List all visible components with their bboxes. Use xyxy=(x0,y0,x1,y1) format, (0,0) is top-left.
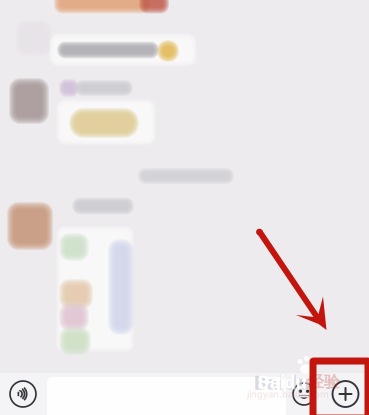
staticText: jingyan.baidu.com xyxy=(247,388,329,400)
staticText: Baidu xyxy=(253,369,310,395)
button[interactable]: More xyxy=(327,371,363,415)
button[interactable]: Voice input xyxy=(0,371,46,415)
button[interactable]: Emoji xyxy=(287,371,321,415)
staticText: 经验 xyxy=(308,372,340,392)
staticText: Baidu xyxy=(257,370,306,393)
